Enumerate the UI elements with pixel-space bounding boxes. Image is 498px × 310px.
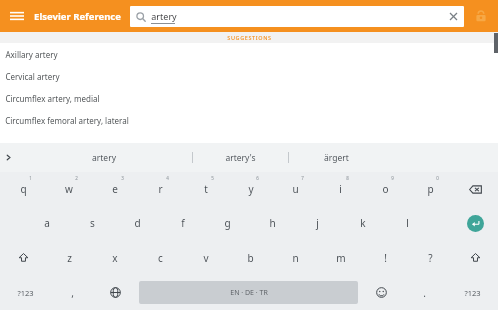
staticText: x bbox=[112, 251, 118, 265]
staticText: d bbox=[134, 216, 141, 230]
button[interactable]: artery bbox=[130, 6, 464, 27]
staticText: c bbox=[158, 251, 163, 265]
button[interactable]: j bbox=[295, 206, 340, 240]
button[interactable]: artery's bbox=[193, 143, 288, 172]
staticText: Elsevier Reference bbox=[34, 10, 121, 23]
staticText: j bbox=[316, 216, 319, 230]
button[interactable]: f bbox=[160, 206, 205, 240]
staticText: ! bbox=[384, 251, 387, 265]
button[interactable]: r bbox=[138, 172, 183, 206]
staticText: 0 bbox=[436, 175, 439, 181]
button[interactable]: h bbox=[250, 206, 295, 240]
button[interactable]: u bbox=[273, 172, 318, 206]
button[interactable]: g bbox=[205, 206, 250, 240]
button[interactable]: Open navigation menu bbox=[0, 0, 34, 32]
staticText: b bbox=[247, 251, 254, 265]
button[interactable]: t bbox=[183, 172, 228, 206]
button[interactable]: . bbox=[403, 275, 446, 310]
staticText: o bbox=[382, 182, 389, 196]
button[interactable]: Shift bbox=[453, 240, 498, 275]
button[interactable]: n bbox=[273, 240, 318, 275]
button[interactable]: b bbox=[228, 240, 273, 275]
staticText: 5 bbox=[211, 175, 214, 181]
staticText: i bbox=[339, 182, 342, 196]
staticText: v bbox=[203, 251, 209, 265]
button[interactable]: Axillary artery bbox=[0, 43, 498, 65]
staticText: f bbox=[181, 216, 185, 230]
button[interactable]: s bbox=[70, 206, 115, 240]
button[interactable]: Change keyboard language bbox=[94, 275, 137, 310]
staticText: w bbox=[65, 182, 73, 196]
button[interactable]: y bbox=[228, 172, 273, 206]
button[interactable]: p bbox=[408, 172, 453, 206]
staticText: 7 bbox=[301, 175, 304, 181]
button[interactable]: ! bbox=[363, 240, 408, 275]
staticText: 1 bbox=[29, 175, 32, 181]
button[interactable]: o bbox=[363, 172, 408, 206]
staticText: 2 bbox=[75, 175, 78, 181]
button[interactable]: Circumflex femoral artery, lateral bbox=[0, 109, 498, 131]
staticText: artery bbox=[151, 10, 177, 22]
button[interactable]: v bbox=[183, 240, 228, 275]
button[interactable]: Backspace bbox=[453, 172, 498, 206]
staticText: s bbox=[90, 216, 95, 230]
staticText: Cervical artery bbox=[5, 71, 60, 82]
staticText: 6 bbox=[256, 175, 259, 181]
staticText: u bbox=[292, 182, 299, 196]
button[interactable]: c bbox=[138, 240, 183, 275]
staticText: Axillary artery bbox=[5, 49, 58, 60]
staticText: ? bbox=[428, 251, 433, 265]
button[interactable]: Cervical artery bbox=[0, 65, 498, 87]
staticText: y bbox=[248, 182, 254, 196]
staticText: ?123 bbox=[464, 288, 481, 298]
staticText: p bbox=[427, 182, 434, 196]
button[interactable]: m bbox=[318, 240, 363, 275]
button[interactable]: ärgert bbox=[289, 143, 384, 172]
button[interactable]: q bbox=[0, 172, 46, 206]
staticText: k bbox=[360, 216, 366, 230]
staticText: e bbox=[112, 182, 118, 196]
staticText: artery bbox=[92, 152, 116, 164]
button[interactable]: d bbox=[115, 206, 160, 240]
staticText: , bbox=[71, 286, 74, 300]
staticText: l bbox=[406, 216, 409, 230]
staticText: m bbox=[336, 251, 346, 265]
button[interactable]: ? bbox=[408, 240, 453, 275]
button[interactable]: Shift bbox=[0, 240, 46, 275]
button[interactable]: a bbox=[24, 206, 70, 240]
button[interactable]: e bbox=[92, 172, 138, 206]
staticText: 4 bbox=[166, 175, 169, 181]
staticText: q bbox=[20, 182, 27, 196]
button[interactable]: Expand suggestions bbox=[0, 143, 16, 172]
button[interactable]: ?123 bbox=[0, 275, 51, 310]
button[interactable]: x bbox=[92, 240, 138, 275]
staticText: ärgert bbox=[324, 152, 349, 164]
staticText: a bbox=[44, 216, 50, 230]
staticText: 8 bbox=[346, 175, 349, 181]
staticText: . bbox=[423, 286, 426, 300]
button[interactable]: i bbox=[318, 172, 363, 206]
button[interactable]: artery bbox=[16, 143, 192, 172]
staticText: 9 bbox=[391, 175, 394, 181]
staticText: ?123 bbox=[17, 288, 34, 298]
button[interactable]: k bbox=[340, 206, 385, 240]
button[interactable]: z bbox=[46, 240, 92, 275]
staticText: n bbox=[292, 251, 299, 265]
staticText: 3 bbox=[121, 175, 124, 181]
staticText: artery's bbox=[225, 152, 256, 164]
button[interactable]: Emoji bbox=[360, 275, 403, 310]
button[interactable]: l bbox=[385, 206, 430, 240]
button[interactable]: Circumflex artery, medial bbox=[0, 87, 498, 109]
button[interactable]: Subscription lock bbox=[464, 0, 498, 32]
button[interactable]: w bbox=[46, 172, 92, 206]
button[interactable]: , bbox=[51, 275, 94, 310]
staticText: SUGGESTIONS bbox=[227, 34, 272, 41]
staticText: r bbox=[158, 182, 163, 196]
button[interactable]: EN · DE · TR bbox=[139, 281, 358, 304]
button[interactable]: ?123 bbox=[446, 275, 498, 310]
button[interactable]: Enter bbox=[453, 206, 498, 240]
staticText: EN · DE · TR bbox=[230, 288, 268, 298]
staticText: t bbox=[204, 182, 208, 196]
staticText: h bbox=[269, 216, 276, 230]
button[interactable]: Clear search bbox=[442, 6, 464, 27]
